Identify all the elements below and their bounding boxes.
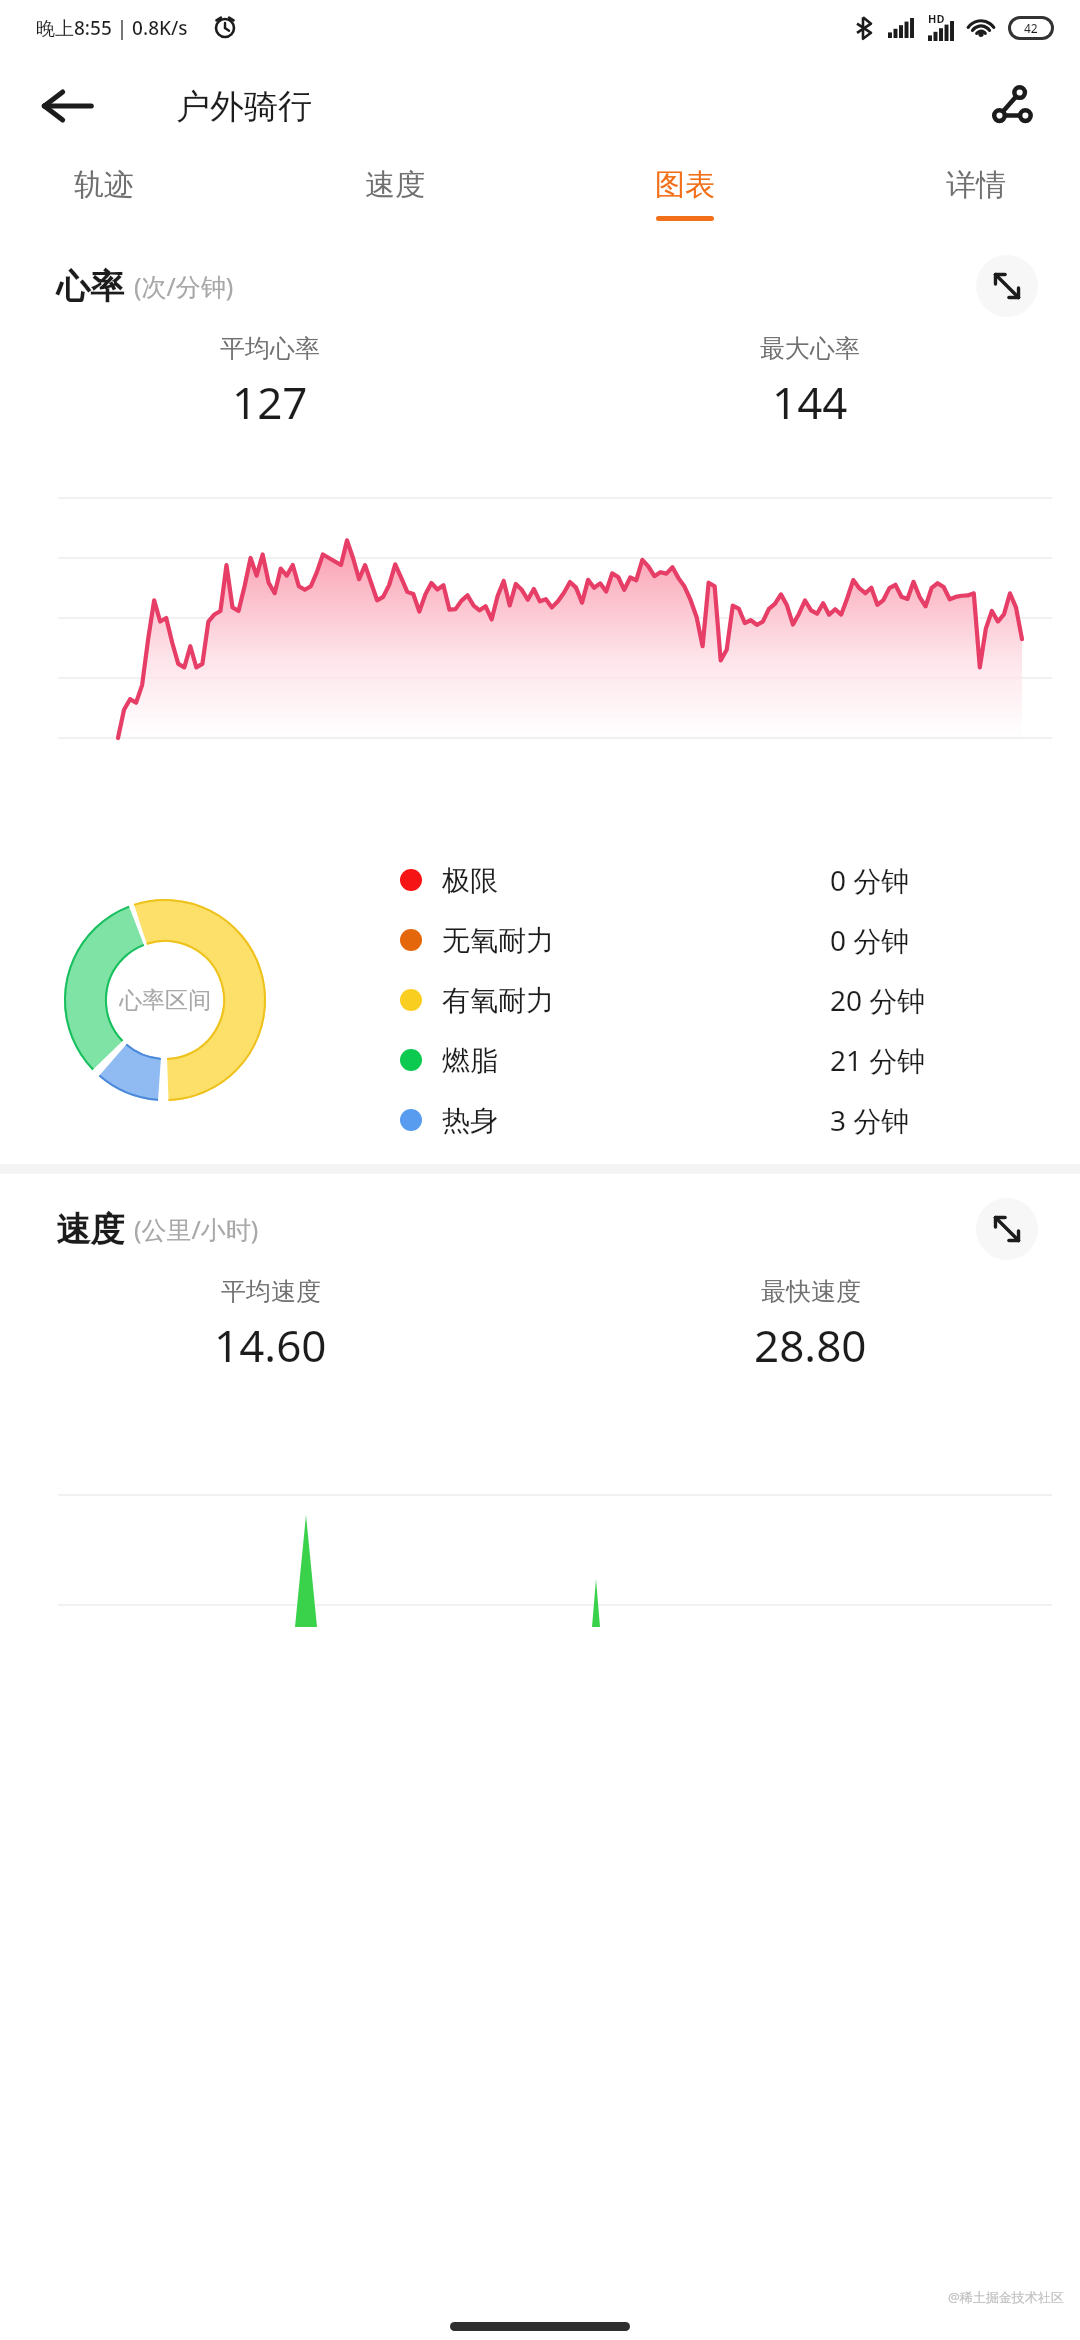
- staticText: HD: [928, 11, 945, 26]
- staticText: 0 分钟: [830, 921, 1020, 959]
- button[interactable]: Expand heart rate: [976, 255, 1038, 317]
- staticText: 极限: [442, 863, 498, 898]
- staticText: 轨迹: [74, 166, 134, 204]
- staticText: 28.80: [754, 1315, 867, 1375]
- staticText: (公里/小时): [134, 1212, 259, 1246]
- staticText: 127: [232, 372, 308, 432]
- staticText: 无氧耐力: [442, 923, 554, 958]
- button[interactable]: 速度: [343, 156, 447, 231]
- staticText: 21 分钟: [830, 1041, 1020, 1079]
- staticText: @稀土掘金技术社区: [948, 2288, 1064, 2306]
- staticText: 42: [1024, 20, 1038, 36]
- staticText: 户外骑行: [176, 85, 312, 128]
- button[interactable]: 图表: [633, 156, 737, 231]
- button[interactable]: 轨迹: [52, 156, 156, 231]
- staticText: 心率: [56, 265, 124, 308]
- staticText: 有氧耐力: [442, 983, 554, 1018]
- staticText: 最大心率: [760, 333, 860, 364]
- button[interactable]: Back: [40, 79, 94, 133]
- staticText: 最快速度: [761, 1276, 861, 1307]
- staticText: 图表: [655, 166, 715, 204]
- staticText: 热身: [442, 1103, 498, 1138]
- staticText: 燃脂: [442, 1043, 498, 1078]
- staticText: 平均心率: [220, 333, 320, 364]
- staticText: 速度: [56, 1208, 124, 1251]
- staticText: 详情: [946, 166, 1006, 204]
- staticText: 3 分钟: [830, 1101, 1020, 1139]
- staticText: 平均速度: [221, 1276, 321, 1307]
- button[interactable]: Expand speed: [976, 1198, 1038, 1260]
- button[interactable]: Share: [980, 75, 1042, 137]
- staticText: 心率区间: [119, 986, 211, 1015]
- staticText: 晚上8:55 | 0.8K/s: [36, 15, 188, 41]
- staticText: 20 分钟: [830, 981, 1020, 1019]
- staticText: 14.60: [214, 1315, 327, 1375]
- staticText: (次/分钟): [134, 269, 234, 303]
- button[interactable]: 详情: [924, 156, 1028, 231]
- staticText: 速度: [365, 166, 425, 204]
- staticText: 144: [772, 372, 848, 432]
- staticText: 0 分钟: [830, 861, 1020, 899]
